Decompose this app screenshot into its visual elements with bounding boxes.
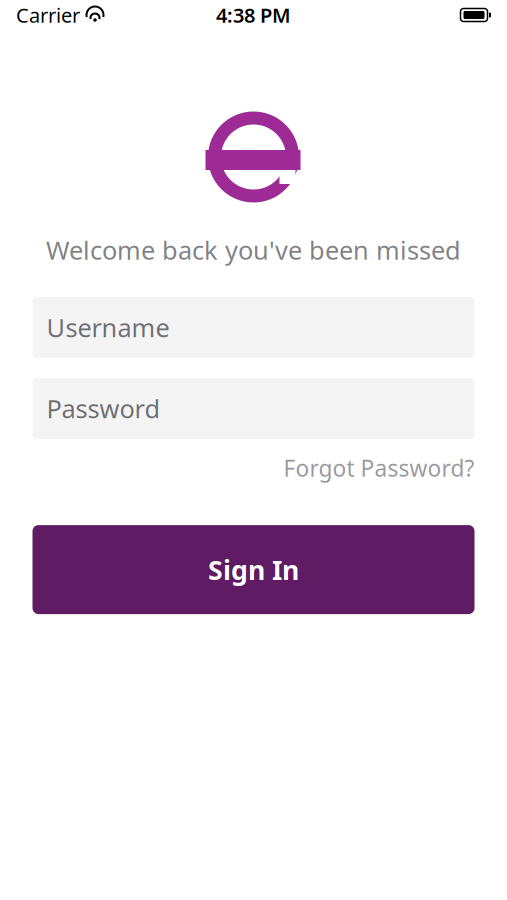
staticText: 4:38 PM: [216, 2, 291, 28]
staticText: Forgot Password?: [283, 453, 474, 483]
staticText: Carrier: [16, 2, 80, 28]
button[interactable]: Forgot Password?: [283, 449, 474, 487]
staticText: Welcome back you've been missed: [46, 233, 461, 267]
staticText: Username: [46, 311, 169, 344]
button[interactable]: Sign In: [32, 525, 474, 614]
staticText: Sign In: [208, 552, 299, 587]
staticText: Password: [46, 392, 160, 425]
